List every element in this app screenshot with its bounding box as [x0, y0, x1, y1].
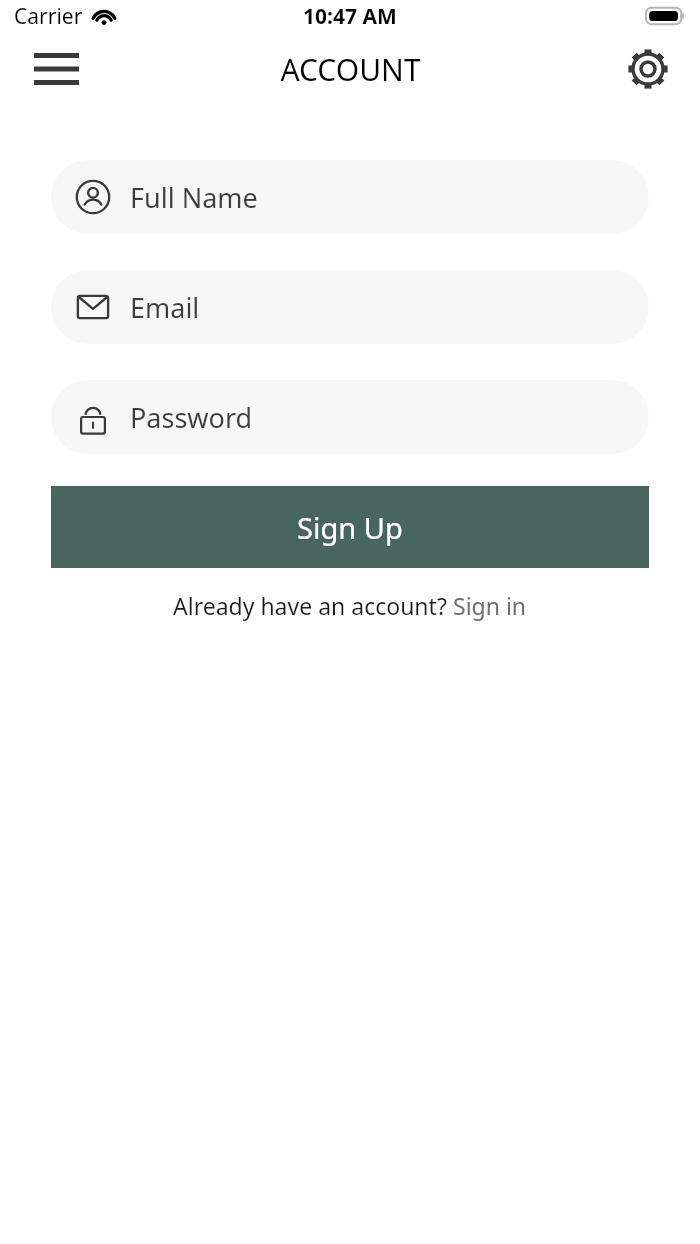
staticText: Carrier	[14, 2, 83, 31]
button[interactable]: Sign Up	[51, 486, 649, 568]
staticText: 10:47 AM	[303, 2, 397, 31]
staticText: Sign Up	[297, 508, 403, 547]
staticText: Email	[130, 289, 200, 326]
button[interactable]: Email	[51, 270, 649, 344]
button[interactable]: Full Name	[51, 160, 649, 234]
staticText: Full Name	[130, 179, 258, 216]
button[interactable]: Password	[51, 380, 649, 454]
button[interactable]: Settings	[622, 43, 674, 95]
button[interactable]: Sign in	[453, 590, 527, 621]
staticText: ACCOUNT	[280, 49, 421, 90]
staticText: Password	[130, 399, 253, 436]
staticText: Sign in	[453, 590, 527, 621]
button[interactable]: Menu	[30, 46, 82, 92]
staticText: Already have an account?	[173, 590, 453, 621]
